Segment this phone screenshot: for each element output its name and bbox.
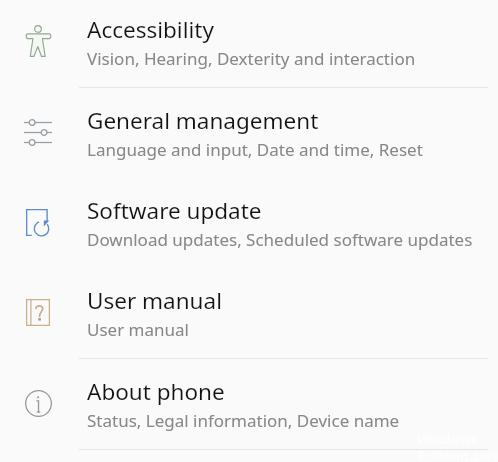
other: Software update bbox=[26, 209, 49, 236]
button[interactable]: General management bbox=[0, 88, 498, 178]
staticText: Language and input, Date and time, Reset bbox=[87, 138, 423, 161]
staticText: Vision, Hearing, Dexterity and interacti… bbox=[87, 47, 416, 70]
other: Accessibility bbox=[25, 25, 52, 57]
other: About phone bbox=[25, 390, 52, 417]
staticText: Download updates, Scheduled software upd… bbox=[87, 228, 473, 251]
button[interactable]: Accessibility bbox=[0, 0, 498, 87]
staticText: Software update bbox=[87, 195, 262, 226]
other: User manual bbox=[26, 299, 50, 326]
staticText: General management bbox=[87, 105, 319, 136]
button[interactable]: User manual bbox=[0, 268, 498, 358]
button[interactable]: About phone bbox=[0, 359, 498, 449]
staticText: User manual bbox=[87, 285, 222, 316]
staticText: Accessibility bbox=[87, 14, 214, 45]
other: General management bbox=[24, 119, 52, 146]
staticText: Status, Legal information, Device name bbox=[87, 409, 400, 432]
button[interactable]: Software update bbox=[0, 178, 498, 268]
staticText: About phone bbox=[87, 376, 225, 407]
staticText: User manual bbox=[87, 318, 189, 341]
staticText: Bulletin.com bbox=[417, 447, 498, 462]
